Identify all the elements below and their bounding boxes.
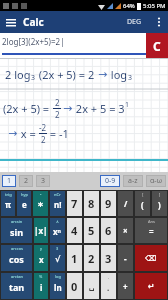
button[interactable]: Calc bbox=[0, 11, 168, 33]
button[interactable]: + bbox=[118, 273, 133, 299]
button[interactable]: ␣ bbox=[84, 273, 99, 299]
staticText: 6 bbox=[105, 223, 112, 238]
button[interactable]: arccos bbox=[1, 245, 32, 271]
button[interactable]: α-ω bbox=[146, 175, 166, 187]
button[interactable]: 3 bbox=[36, 175, 50, 187]
staticText: xⁿ bbox=[53, 226, 62, 237]
button[interactable]: 8 bbox=[84, 191, 99, 216]
button[interactable]: a-z bbox=[123, 175, 143, 187]
staticText: 1 bbox=[125, 100, 130, 110]
staticText: ∧ bbox=[56, 219, 59, 224]
button[interactable]: 6 bbox=[101, 218, 116, 243]
staticText: 2log[3](2x+5)=2| bbox=[2, 36, 65, 47]
staticText: ⌫ bbox=[145, 254, 157, 263]
staticText: n! bbox=[54, 199, 62, 210]
button[interactable]: C bbox=[146, 33, 168, 58]
button[interactable]: trig bbox=[1, 191, 15, 216]
button[interactable]: 7 bbox=[67, 191, 82, 216]
staticText: ␣ bbox=[89, 282, 95, 291]
staticText: + bbox=[123, 281, 128, 292]
staticText: 1 bbox=[7, 176, 12, 186]
button[interactable]: • bbox=[33, 191, 48, 216]
button[interactable]: [ bbox=[135, 191, 150, 216]
button[interactable]: log bbox=[50, 273, 65, 299]
staticText: 4 bbox=[71, 223, 78, 238]
staticText: log bbox=[108, 67, 128, 82]
button[interactable]: Ans bbox=[135, 218, 167, 243]
button[interactable]: 5 bbox=[84, 218, 99, 243]
button[interactable]: ⌫ bbox=[135, 245, 167, 271]
staticText: C bbox=[153, 38, 161, 54]
staticText: x bbox=[39, 254, 44, 265]
staticText: log bbox=[55, 274, 61, 279]
staticText: . bbox=[107, 282, 110, 293]
staticText: 0 bbox=[71, 279, 78, 294]
staticText: • bbox=[40, 192, 42, 197]
staticText: → bbox=[98, 68, 108, 81]
staticText: → bbox=[63, 102, 73, 115]
staticText: (2x + 5) = 2 bbox=[36, 67, 98, 82]
button[interactable]: 0-9 bbox=[100, 175, 120, 187]
button[interactable]: 3 bbox=[101, 245, 116, 271]
staticText: → bbox=[8, 127, 18, 140]
button[interactable]: 0 bbox=[67, 273, 82, 299]
staticText: π bbox=[5, 199, 11, 210]
button[interactable]: |x| bbox=[34, 218, 48, 243]
staticText: 2x + 5 = 3 bbox=[73, 101, 125, 116]
staticText: × bbox=[123, 225, 128, 236]
staticText: x = bbox=[18, 126, 39, 141]
staticText: y bbox=[40, 246, 43, 251]
button[interactable]: 9 bbox=[101, 191, 116, 216]
button[interactable]: 2 bbox=[84, 245, 99, 271]
button[interactable]: / bbox=[118, 191, 133, 216]
staticText: = bbox=[149, 226, 154, 237]
staticText: i bbox=[40, 282, 43, 293]
staticText: cos bbox=[9, 253, 24, 265]
staticText: 2 bbox=[88, 251, 95, 266]
staticText: Ans bbox=[148, 219, 155, 224]
staticText: (2x + 5) = bbox=[3, 101, 53, 116]
staticText: 3 bbox=[105, 251, 112, 266]
staticText: 2 bbox=[55, 109, 60, 120]
staticText: √ bbox=[55, 255, 61, 264]
staticText: hyp bbox=[21, 192, 28, 197]
staticText: - bbox=[124, 253, 127, 264]
button[interactable]: × bbox=[118, 218, 133, 243]
button[interactable]: ↵ bbox=[135, 273, 167, 299]
button[interactable]: 3 bbox=[50, 245, 65, 271]
staticText: sin bbox=[10, 226, 24, 238]
button[interactable]: arcsin bbox=[1, 218, 32, 243]
button[interactable]: 1 bbox=[67, 245, 82, 271]
button[interactable]: % bbox=[34, 273, 48, 299]
staticText: 9 bbox=[105, 196, 112, 211]
staticText: / bbox=[124, 198, 128, 209]
button[interactable]: hyp bbox=[17, 191, 31, 216]
staticText: 3 bbox=[41, 176, 46, 186]
staticText bbox=[61, 106, 63, 111]
staticText: [ bbox=[142, 192, 144, 197]
button[interactable]: , bbox=[101, 273, 116, 299]
staticText: ↵ bbox=[148, 282, 155, 291]
staticText: 3 bbox=[56, 246, 59, 251]
staticText: 2 log bbox=[5, 67, 31, 82]
staticText: trig bbox=[5, 192, 12, 197]
button[interactable]: ] bbox=[152, 191, 167, 216]
staticText: DEG bbox=[127, 17, 142, 27]
staticText: ∗ bbox=[37, 200, 44, 209]
staticText: 2 bbox=[24, 176, 29, 186]
button[interactable]: ∧ bbox=[50, 218, 65, 243]
button[interactable]: arctan bbox=[1, 273, 32, 299]
button[interactable]: 2 bbox=[19, 175, 33, 187]
staticText: ) bbox=[158, 199, 161, 210]
staticText: e bbox=[22, 199, 27, 210]
button[interactable]: 1 bbox=[2, 175, 16, 187]
staticText: 3 bbox=[128, 73, 133, 83]
button[interactable]: 4 bbox=[67, 218, 82, 243]
button[interactable]: y bbox=[34, 245, 48, 271]
staticText: a-z bbox=[128, 176, 138, 186]
button[interactable]: nCr bbox=[50, 191, 65, 216]
staticText: arctan bbox=[11, 274, 23, 279]
button[interactable]: - bbox=[118, 245, 133, 271]
staticText: 1 bbox=[71, 251, 78, 266]
staticText: tan bbox=[9, 281, 25, 293]
